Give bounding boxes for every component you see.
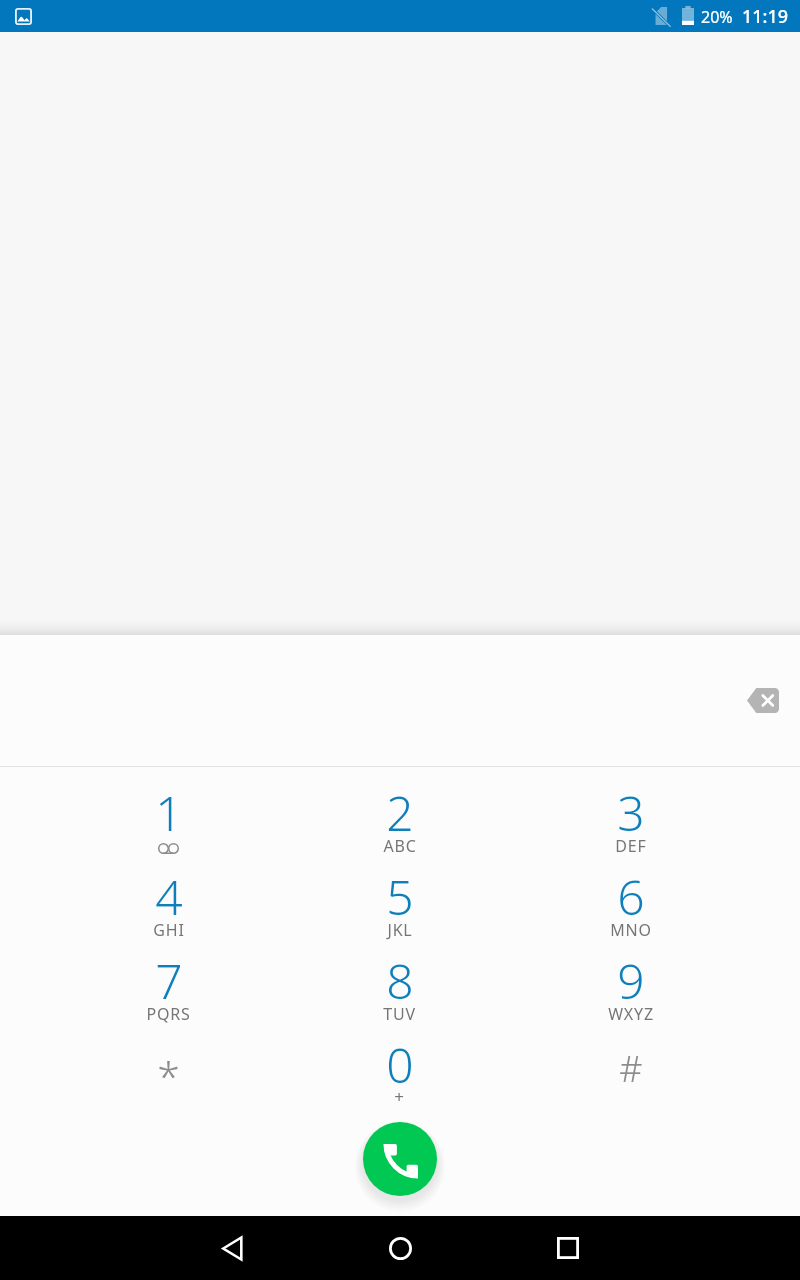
staticText: 9 xyxy=(617,948,645,1013)
staticText: 3 xyxy=(617,780,645,845)
staticText: JKL xyxy=(387,919,413,941)
staticText: GHI xyxy=(153,919,185,941)
button[interactable]: Call xyxy=(363,1122,437,1196)
staticText: 2 xyxy=(386,780,414,845)
staticText: DEF xyxy=(615,835,647,857)
button[interactable]: Recents xyxy=(536,1216,600,1280)
staticText: 4 xyxy=(155,864,183,929)
staticText: TUV xyxy=(383,1003,416,1025)
staticText: 6 xyxy=(617,864,645,929)
button[interactable]: * xyxy=(53,1020,284,1103)
button[interactable]: 1 xyxy=(53,768,284,851)
staticText: MNO xyxy=(610,919,652,941)
staticText: * xyxy=(157,1048,180,1104)
staticText: 8 xyxy=(386,948,414,1013)
staticText: 11:19 xyxy=(742,4,789,29)
button[interactable]: 0 xyxy=(284,1020,515,1103)
staticText: 5 xyxy=(386,864,414,929)
staticText: ABC xyxy=(383,835,417,857)
button[interactable]: 9 xyxy=(515,936,746,1019)
staticText: WXYZ xyxy=(608,1003,654,1025)
button[interactable]: 7 xyxy=(53,936,284,1019)
staticText: 0 xyxy=(386,1032,414,1097)
button[interactable]: # xyxy=(515,1020,746,1103)
button[interactable]: 5 xyxy=(284,852,515,935)
button[interactable]: Phone number xyxy=(0,635,800,766)
staticText: # xyxy=(619,1044,643,1093)
button[interactable]: 2 xyxy=(284,768,515,851)
staticText: 7 xyxy=(155,948,183,1013)
button[interactable]: 4 xyxy=(53,852,284,935)
button[interactable]: 8 xyxy=(284,936,515,1019)
button[interactable]: 3 xyxy=(515,768,746,851)
button[interactable]: Backspace xyxy=(734,676,792,724)
button[interactable]: Back xyxy=(200,1216,264,1280)
staticText: + xyxy=(394,1085,405,1108)
staticText: PQRS xyxy=(146,1003,191,1025)
staticText: 20% xyxy=(701,6,733,28)
button[interactable]: 6 xyxy=(515,852,746,935)
button[interactable]: Home xyxy=(368,1216,432,1280)
staticText: 1 xyxy=(155,780,183,845)
